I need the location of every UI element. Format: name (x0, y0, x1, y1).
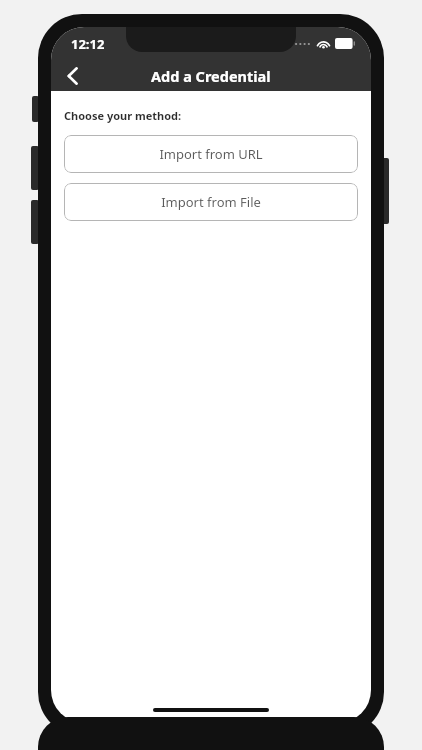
staticText: 12:12 (71, 35, 105, 53)
button[interactable]: Import from URL (64, 135, 358, 173)
staticText: Add a Credential (151, 66, 271, 86)
button[interactable]: Import from File (64, 183, 358, 221)
staticText: Choose your method: (64, 108, 182, 123)
button[interactable]: Back (51, 60, 93, 91)
staticText: Import from File (161, 193, 261, 211)
staticText: Import from URL (159, 145, 263, 163)
